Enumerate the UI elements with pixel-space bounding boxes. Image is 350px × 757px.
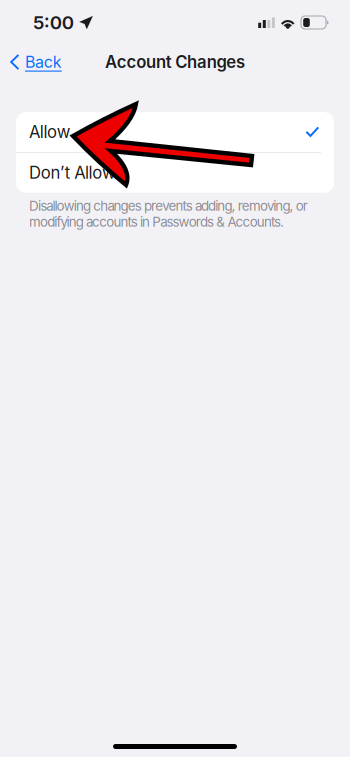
staticText: Account Changes bbox=[105, 52, 245, 72]
staticText: Back bbox=[25, 52, 62, 72]
staticText: Disallowing changes prevents adding, rem… bbox=[29, 198, 308, 230]
staticText: Don’t Allow bbox=[29, 163, 116, 183]
button[interactable]: Don’t Allow bbox=[16, 153, 334, 193]
staticText: 5:00 bbox=[33, 11, 74, 34]
button[interactable]: Back bbox=[0, 45, 72, 79]
staticText: Allow bbox=[29, 122, 71, 142]
button[interactable]: Allow bbox=[16, 112, 334, 152]
